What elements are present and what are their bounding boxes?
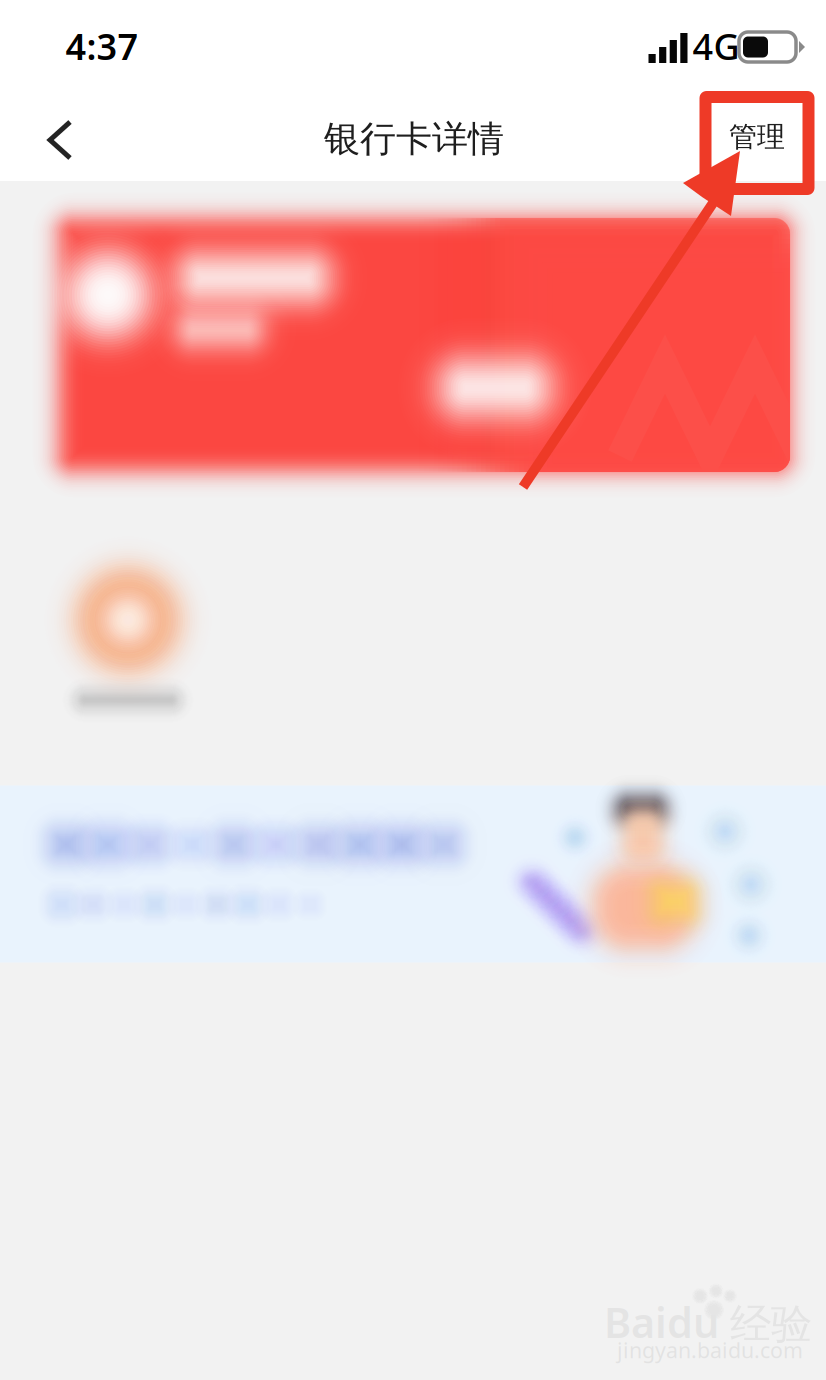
staticText: 银行卡详情 <box>324 117 504 161</box>
staticText: 4G <box>692 22 739 70</box>
button[interactable]: 管理 <box>711 106 803 168</box>
staticText: Baidu 经验 <box>604 1294 812 1349</box>
button[interactable]: Back <box>15 95 101 181</box>
staticText: jingyan.baidu.com <box>617 1336 803 1364</box>
button[interactable]: Card service <box>18 510 238 750</box>
staticText: 4:37 <box>65 22 138 70</box>
staticText: 管理 <box>729 120 785 154</box>
